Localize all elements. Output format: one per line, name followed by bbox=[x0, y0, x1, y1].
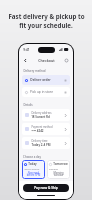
button[interactable]: Tomorrow bbox=[47, 160, 70, 179]
staticText: fit your schedule. bbox=[19, 21, 73, 29]
staticText: Delivery time bbox=[31, 139, 48, 143]
staticText: Reserved before 5PM bbox=[24, 171, 43, 177]
staticText: •••• 4242 bbox=[31, 129, 44, 133]
button[interactable]: Delivery time bbox=[22, 137, 70, 149]
staticText: Deliver order bbox=[30, 78, 51, 82]
button[interactable]: Delivery address bbox=[22, 109, 70, 121]
staticText: 18 Sunset Rd bbox=[31, 115, 50, 119]
staticText: Today 2-4 PM bbox=[31, 143, 51, 147]
staticText: Checkout bbox=[38, 58, 55, 63]
button[interactable]: Back bbox=[22, 57, 29, 64]
staticText: Today bbox=[28, 162, 37, 166]
button[interactable]: Deliver order bbox=[22, 75, 70, 85]
button[interactable]: Help bbox=[63, 57, 70, 64]
staticText: Flexible bbox=[49, 167, 58, 170]
button[interactable]: Payment method bbox=[22, 123, 70, 135]
staticText: Pick up in store bbox=[30, 90, 53, 94]
staticText: Pay now & Ship bbox=[34, 186, 58, 190]
button[interactable]: Pick up in store bbox=[22, 87, 70, 97]
staticText: Tomorrow bbox=[53, 162, 68, 166]
staticText: Morning window bbox=[49, 171, 68, 177]
staticText: Fast delivery & pickup to bbox=[8, 12, 85, 20]
staticText: Delivery address bbox=[31, 111, 52, 115]
staticText: Delivery method bbox=[23, 69, 46, 73]
button[interactable]: Pay now & Ship bbox=[23, 184, 69, 192]
staticText: Get it sooner bbox=[24, 167, 40, 170]
staticText: Choose a day bbox=[23, 155, 41, 159]
staticText: Details bbox=[23, 103, 33, 107]
staticText: Payment method bbox=[31, 125, 53, 129]
staticText: 9:41 bbox=[23, 48, 30, 52]
button[interactable]: Today bbox=[22, 160, 45, 179]
